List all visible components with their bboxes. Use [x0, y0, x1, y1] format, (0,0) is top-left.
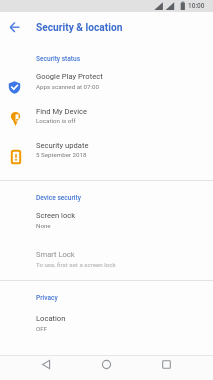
button[interactable]: Security update — [0, 135, 213, 170]
staticText: None — [36, 222, 51, 229]
staticText: Smart Lock — [36, 250, 75, 259]
staticText: Find My Device — [36, 107, 87, 116]
button[interactable] — [5, 17, 25, 37]
staticText: Location — [36, 314, 66, 323]
button[interactable] — [38, 356, 55, 373]
staticText: Apps scanned at 07:00 — [36, 83, 99, 90]
button[interactable] — [98, 356, 115, 373]
button[interactable]: Find My Device — [0, 101, 213, 136]
staticText: Google Play Protect — [36, 72, 103, 81]
button[interactable] — [158, 356, 175, 373]
staticText: 10:00 — [188, 2, 205, 10]
staticText: Security & location — [36, 22, 123, 34]
staticText: Device security — [36, 194, 81, 202]
button[interactable]: Smart Lock — [0, 244, 213, 281]
staticText: OFF — [36, 325, 48, 332]
staticText: 5 September 2018 — [36, 151, 87, 158]
staticText: To use, first set a screen lock — [36, 261, 116, 268]
button[interactable]: Location — [0, 308, 213, 346]
staticText: Security update — [36, 141, 89, 150]
staticText: Screen lock — [36, 211, 76, 220]
staticText: Privacy — [36, 294, 58, 302]
staticText: Location is off — [36, 117, 76, 124]
button[interactable]: Google Play Protect — [0, 66, 213, 101]
button[interactable]: Screen lock — [0, 206, 213, 243]
staticText: Security status — [36, 55, 81, 63]
